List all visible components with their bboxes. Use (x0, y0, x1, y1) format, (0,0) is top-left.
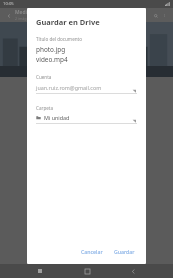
button[interactable]: Search (151, 11, 160, 20)
button[interactable]: Recent apps (33, 264, 47, 278)
button[interactable]: Cancelar (77, 246, 107, 257)
staticText: Guardar (114, 248, 135, 255)
staticText: Guardar en Drive (36, 17, 100, 27)
button[interactable]: Back (126, 264, 140, 278)
button[interactable]: Cuenta (27, 74, 146, 96)
button[interactable]: Home (80, 264, 94, 278)
staticText: juan.ruiz.rom@gmail.com (36, 84, 137, 91)
staticText: Cancelar (81, 248, 103, 255)
staticText: Título del documento (36, 36, 83, 42)
staticText: 2 imágenes (15, 16, 35, 21)
staticText: Mi unidad (44, 114, 137, 121)
staticText: Medios (15, 9, 33, 16)
staticText: Carpeta (36, 105, 54, 111)
staticText: photo.jpg (36, 45, 66, 54)
staticText: Cuenta (36, 74, 52, 80)
staticText: video.mp4 (36, 55, 68, 64)
staticText: 10:05 (3, 1, 14, 7)
button[interactable]: Back (4, 11, 13, 20)
button[interactable]: Carpeta (27, 105, 146, 126)
button[interactable]: Guardar (110, 246, 139, 257)
